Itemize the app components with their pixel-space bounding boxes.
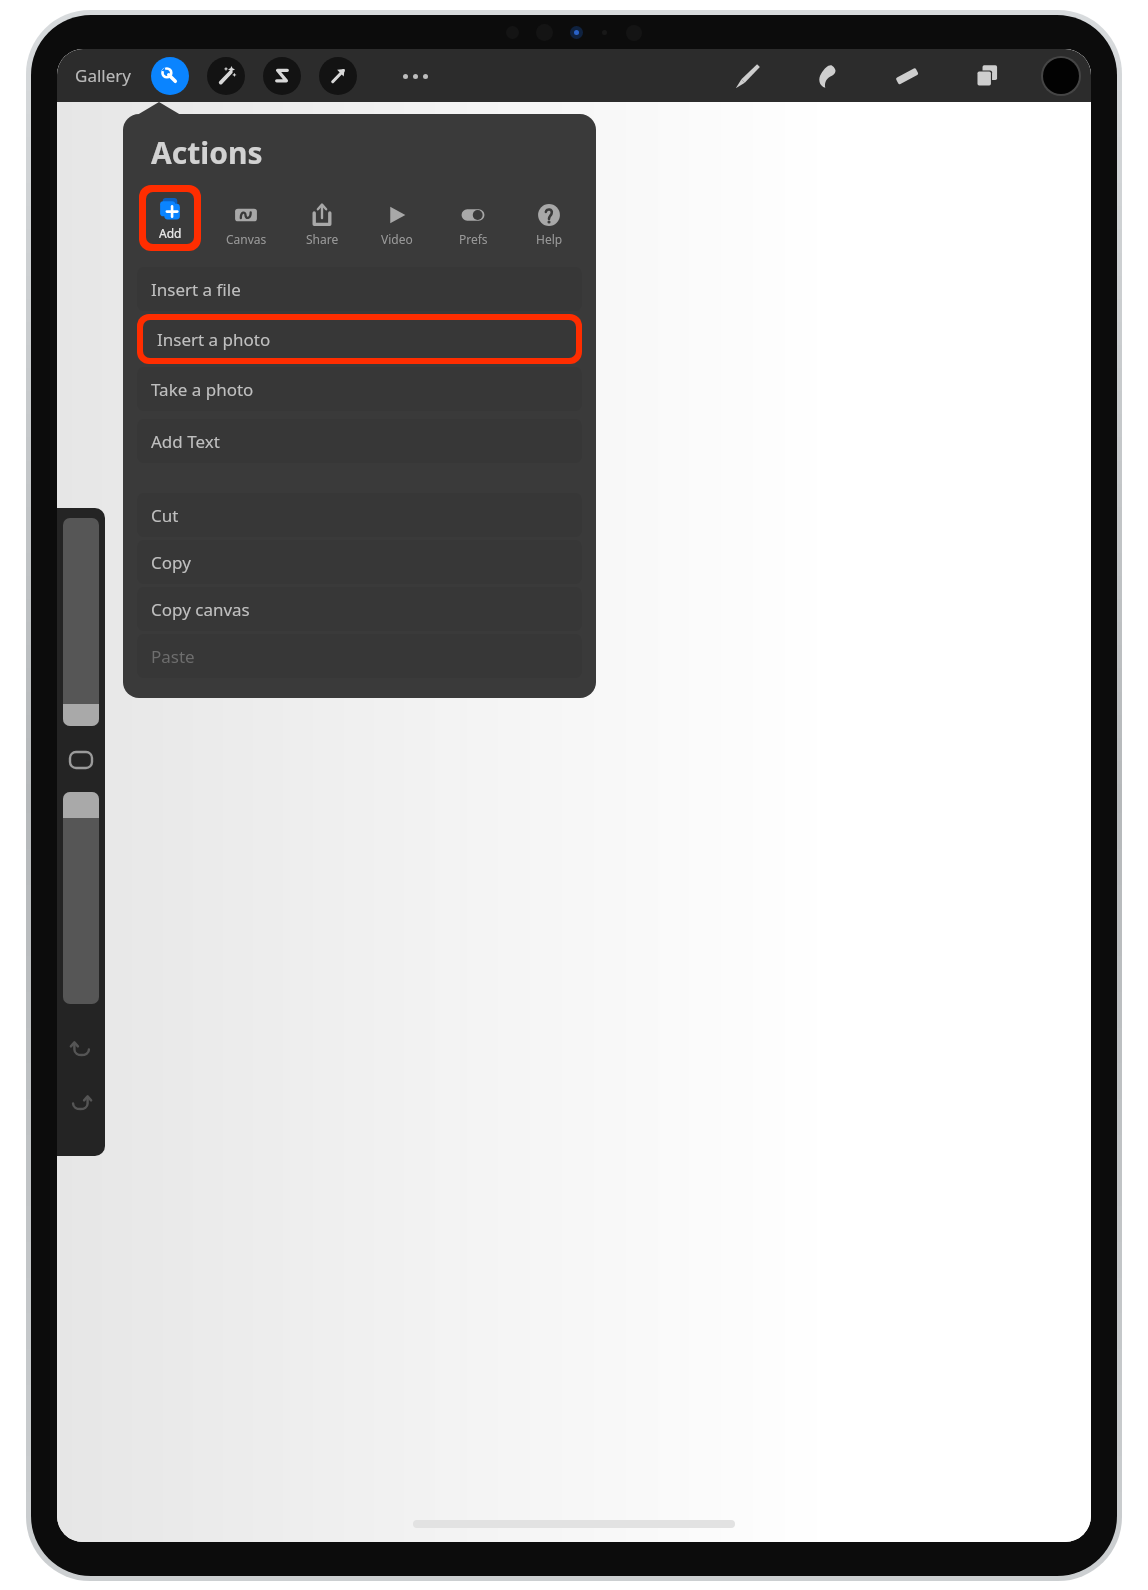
button[interactable]: Video [366, 198, 428, 251]
button[interactable]: More [397, 58, 433, 94]
button[interactable]: Selection [263, 57, 301, 95]
staticText: Prefs [459, 231, 488, 247]
staticText: Add Text [151, 430, 220, 453]
button[interactable]: Redo [66, 1088, 96, 1118]
button[interactable]: Gallery [71, 60, 135, 91]
staticText: Copy canvas [151, 598, 250, 621]
button[interactable]: Copy [137, 540, 582, 584]
staticText: Copy [151, 551, 191, 574]
button[interactable]: Help [518, 198, 580, 251]
button[interactable]: Share [291, 198, 353, 251]
staticText: Take a photo [151, 378, 254, 401]
staticText: Paste [151, 645, 195, 668]
button[interactable]: Opacity [63, 792, 99, 1004]
button[interactable]: Take a photo [137, 367, 582, 411]
button[interactable]: Canvas [215, 198, 277, 251]
button[interactable]: Insert a file [137, 267, 582, 311]
button[interactable]: Brush size [63, 518, 99, 726]
button[interactable]: Insert a photo [143, 320, 576, 358]
staticText: Cut [151, 504, 179, 527]
staticText: Gallery [75, 64, 131, 87]
button[interactable]: Transform [319, 57, 357, 95]
staticText: Add [159, 225, 182, 241]
button[interactable]: Paste [137, 634, 582, 678]
button[interactable]: Modify [68, 750, 94, 770]
button[interactable]: Prefs [442, 198, 504, 251]
button[interactable]: Color [1041, 56, 1081, 96]
staticText: Insert a photo [157, 328, 271, 351]
button[interactable]: Add Text [137, 419, 582, 463]
staticText: Video [381, 231, 413, 247]
button[interactable]: Layers [967, 56, 1007, 96]
button[interactable]: Brush [727, 56, 767, 96]
button[interactable]: Eraser [887, 56, 927, 96]
staticText: Help [536, 231, 563, 247]
button[interactable]: Undo [66, 1034, 96, 1064]
button[interactable]: Smudge [807, 56, 847, 96]
staticText: Actions [151, 132, 263, 173]
button[interactable]: Actions [151, 57, 189, 95]
staticText: Share [306, 231, 339, 247]
button[interactable]: Cut [137, 493, 582, 537]
button[interactable]: Adjustments [207, 57, 245, 95]
button[interactable]: Add [139, 192, 201, 245]
staticText: Canvas [226, 231, 267, 247]
button[interactable]: Copy canvas [137, 587, 582, 631]
staticText: Insert a file [151, 278, 241, 301]
